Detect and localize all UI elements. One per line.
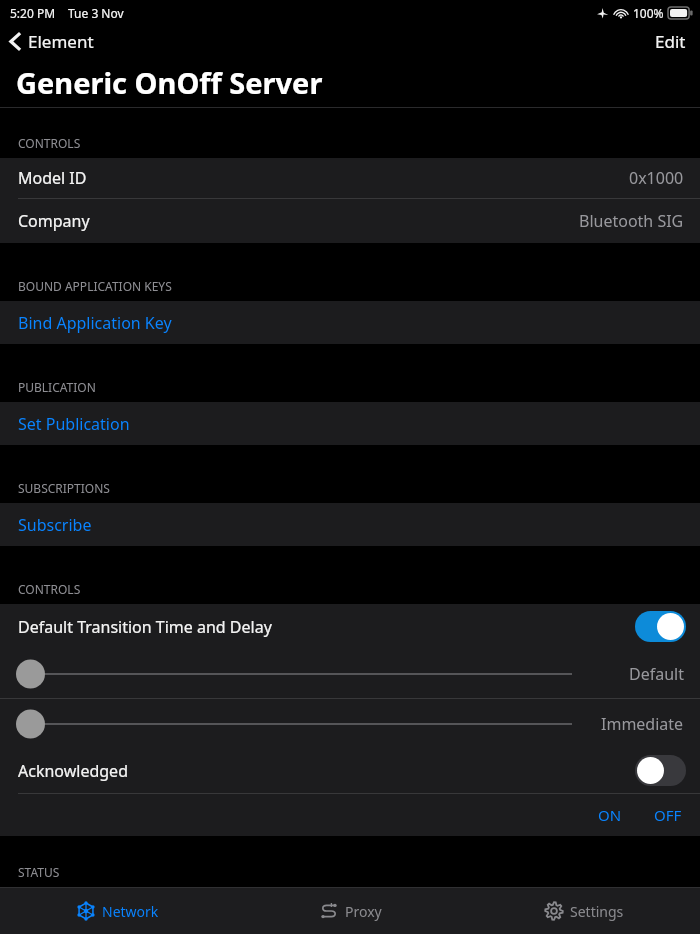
button[interactable]: Model ID <box>0 158 700 199</box>
staticText: Generic OnOff Server <box>16 63 323 102</box>
button[interactable]: Subscribe <box>0 503 700 546</box>
staticText: Set Publication <box>18 413 130 435</box>
staticText: STATUS <box>18 864 60 880</box>
button[interactable]: Toggle off <box>635 755 686 786</box>
staticText: ON <box>598 805 622 825</box>
button[interactable]: Element <box>0 28 104 55</box>
staticText: Default <box>629 663 684 685</box>
staticText: Settings <box>570 902 624 921</box>
staticText: Immediate <box>601 713 684 735</box>
staticText: Bluetooth SIG <box>579 210 684 232</box>
staticText: 100% <box>633 5 664 21</box>
button[interactable]: Default Transition Time and Delay <box>0 604 700 649</box>
staticText: Element <box>28 30 94 53</box>
button[interactable]: Set Publication <box>0 402 700 445</box>
staticText: PUBLICATION <box>18 379 96 395</box>
staticText: CONTROLS <box>18 135 81 151</box>
staticText: CONTROLS <box>18 581 81 597</box>
staticText: SUBSCRIPTIONS <box>18 480 110 496</box>
button[interactable]: Bind Application Key <box>0 301 700 344</box>
staticText: Company <box>18 210 90 232</box>
staticText: Edit <box>655 30 686 53</box>
button[interactable]: Edit <box>641 26 700 57</box>
button[interactable]: OFF <box>638 799 700 831</box>
staticText: BOUND APPLICATION KEYS <box>18 278 172 294</box>
button[interactable]: Company <box>0 199 700 243</box>
staticText: 5:20 PM <box>10 5 56 21</box>
staticText: Proxy <box>345 902 382 921</box>
button[interactable]: Slider Immediate <box>16 709 572 739</box>
button[interactable]: Slider Default <box>16 659 572 689</box>
staticText: Subscribe <box>18 514 92 536</box>
staticText: 0x1000 <box>629 167 684 189</box>
button[interactable]: Network <box>0 888 234 934</box>
staticText: OFF <box>654 805 682 825</box>
button[interactable]: Toggle on <box>635 611 686 642</box>
button[interactable]: Proxy <box>234 888 467 934</box>
staticText: Tue 3 Nov <box>68 5 124 21</box>
staticText: Network <box>102 902 159 921</box>
button[interactable]: Settings <box>467 888 700 934</box>
staticText: Default Transition Time and Delay <box>18 616 272 638</box>
staticText: Bind Application Key <box>18 312 172 334</box>
button[interactable]: Acknowledged <box>0 748 700 793</box>
button[interactable]: ON <box>582 799 638 831</box>
staticText: Acknowledged <box>18 760 128 782</box>
staticText: Model ID <box>18 167 87 189</box>
